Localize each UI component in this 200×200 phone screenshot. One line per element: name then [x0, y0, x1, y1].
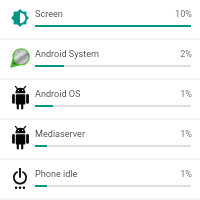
staticText: 1%: [150, 169, 192, 180]
staticText: 2%: [150, 49, 192, 60]
button[interactable]: Screen: [0, 0, 200, 40]
staticText: Screen: [35, 9, 63, 20]
button[interactable]: Mediaserver: [0, 120, 200, 160]
button[interactable]: Android OS: [0, 80, 200, 120]
staticText: 10%: [150, 9, 192, 20]
button[interactable]: Android System: [0, 40, 200, 80]
staticText: Phone idle: [35, 169, 78, 180]
button[interactable]: Phone idle: [0, 160, 200, 200]
staticText: 1%: [150, 129, 192, 140]
staticText: Mediaserver: [35, 129, 85, 140]
staticText: Android OS: [35, 89, 81, 100]
staticText: Android System: [35, 49, 100, 60]
staticText: 1%: [150, 89, 192, 100]
